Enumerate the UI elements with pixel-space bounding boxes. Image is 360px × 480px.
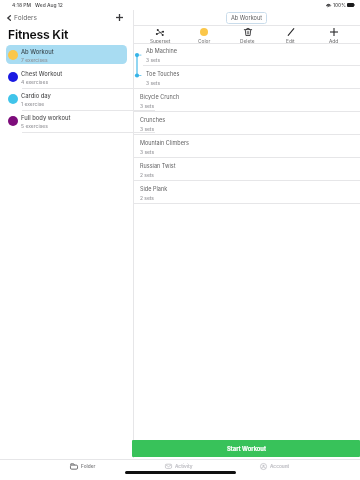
button[interactable]: Ab Workout	[0, 45, 133, 67]
staticText: Add	[329, 38, 339, 43]
staticText: 2 sets	[140, 195, 154, 201]
staticText: Folder	[81, 463, 96, 469]
button[interactable]: Russian Twist	[134, 158, 360, 181]
button[interactable]: Edit	[269, 26, 312, 43]
staticText: 5 exercises	[21, 123, 48, 129]
staticText: Toe Touches	[146, 71, 180, 78]
button[interactable]: Folder	[35, 459, 130, 473]
staticText: Cardio day	[21, 92, 51, 99]
button[interactable]: Account	[226, 459, 322, 473]
staticText: 100%	[333, 2, 346, 8]
button[interactable]: Start Workout	[132, 440, 360, 457]
button[interactable]: Ab Workout	[226, 12, 267, 24]
button[interactable]: Superset	[138, 26, 182, 43]
staticText: 3 sets	[146, 57, 160, 63]
staticText: Full body workout	[21, 114, 71, 121]
staticText: Wed Aug 12	[35, 2, 63, 8]
button[interactable]: Full body workout	[0, 111, 133, 133]
staticText: Ab Workout	[231, 15, 263, 22]
button[interactable]: Ab Machine	[134, 43, 360, 66]
staticText: Start Workout	[227, 445, 266, 452]
staticText: Crunches	[140, 117, 166, 124]
button[interactable]: Toe Touches	[134, 66, 360, 89]
staticText: 4:18 PM	[12, 2, 31, 8]
button[interactable]: Color	[182, 26, 226, 43]
staticText: Account	[270, 463, 290, 469]
button[interactable]: Folders	[5, 12, 40, 23]
staticText: Folders	[14, 14, 38, 22]
staticText: Color	[198, 38, 211, 43]
staticText: Mountain Climbers	[140, 140, 189, 147]
button[interactable]: Add	[312, 26, 355, 43]
staticText: Ab Workout	[21, 48, 54, 55]
staticText: Superset	[150, 38, 171, 43]
staticText: 3 sets	[140, 149, 154, 155]
staticText: Bicycle Crunch	[140, 94, 180, 101]
staticText: Activity	[175, 463, 193, 469]
staticText: Edit	[286, 38, 295, 43]
staticText: 3 sets	[140, 126, 154, 132]
button[interactable]: Delete	[226, 26, 269, 43]
button[interactable]: Mountain Climbers	[134, 135, 360, 158]
button[interactable]: Crunches	[134, 112, 360, 135]
staticText: Delete	[240, 38, 255, 43]
button[interactable]: Cardio day	[0, 89, 133, 111]
staticText: 7 exercises	[21, 57, 48, 63]
staticText: 3 sets	[140, 103, 154, 109]
button[interactable]: Add workout	[112, 10, 127, 25]
staticText: Ab Machine	[146, 48, 177, 55]
staticText: Side Plank	[140, 186, 168, 193]
staticText: Fitness Kit	[8, 27, 69, 42]
button[interactable]: Side Plank	[134, 181, 360, 204]
staticText: 4 exercises	[21, 79, 49, 85]
button[interactable]: Bicycle Crunch	[134, 89, 360, 112]
staticText: Russian Twist	[140, 163, 176, 170]
button[interactable]: Chest Workout	[0, 67, 133, 89]
staticText: 3 sets	[146, 80, 160, 86]
staticText: 2 sets	[140, 172, 154, 178]
staticText: Chest Workout	[21, 70, 63, 77]
staticText: 1 exercise	[21, 101, 45, 107]
button[interactable]: Activity	[130, 459, 226, 473]
